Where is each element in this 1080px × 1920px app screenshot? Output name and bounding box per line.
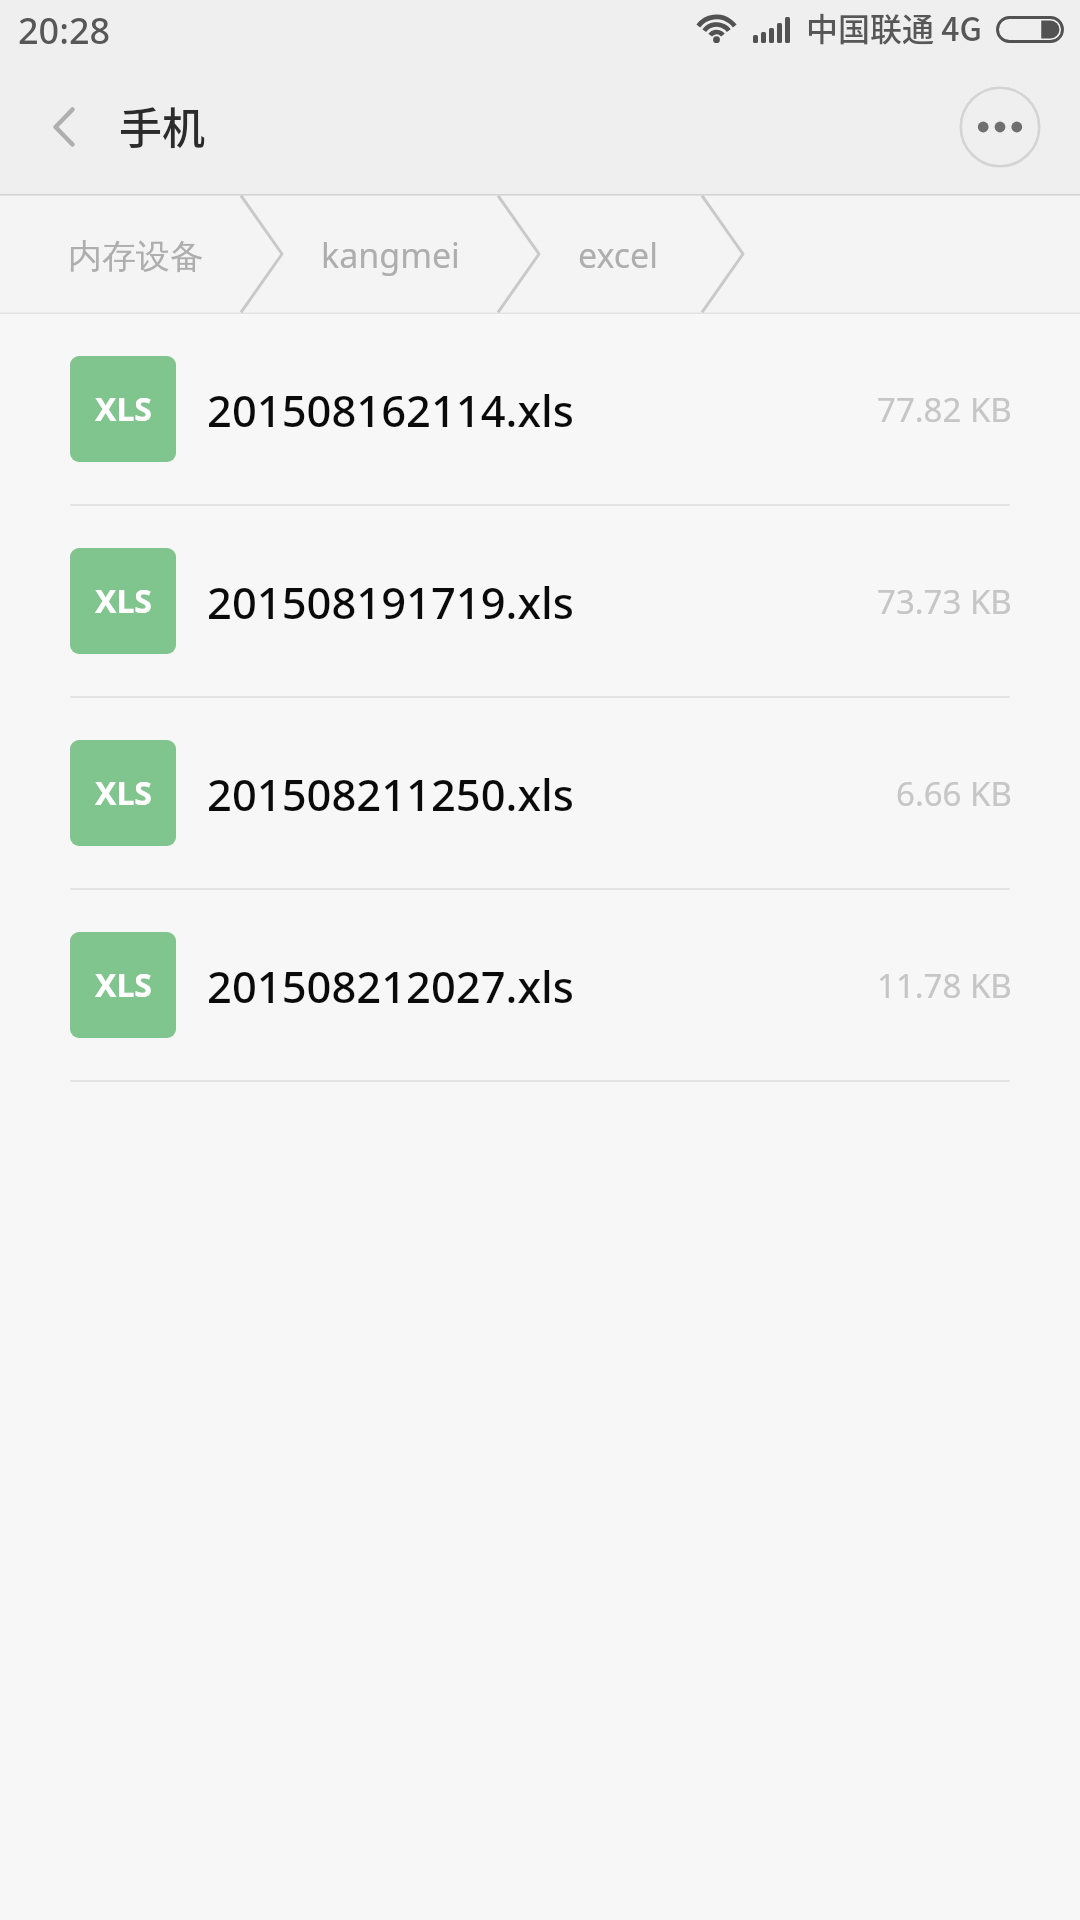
- staticText: 201508162114.xls: [207, 380, 877, 439]
- button[interactable]: 内存设备: [68, 194, 204, 314]
- staticText: 11.78 KB: [877, 963, 1012, 1008]
- staticText: 201508211250.xls: [207, 764, 896, 823]
- button[interactable]: Back: [16, 79, 112, 175]
- staticText: 20:28: [18, 6, 111, 55]
- staticText: 中国联通 4G: [806, 4, 982, 50]
- staticText: XLS: [95, 771, 152, 815]
- staticText: XLS: [95, 579, 152, 623]
- staticText: 6.66 KB: [896, 771, 1012, 816]
- staticText: excel: [578, 232, 659, 278]
- button[interactable]: kangmei: [321, 194, 460, 314]
- button[interactable]: XLS: [0, 506, 1080, 698]
- button[interactable]: XLS: [0, 314, 1080, 506]
- staticText: XLS: [95, 387, 152, 431]
- button[interactable]: More options: [955, 82, 1045, 172]
- staticText: 73.73 KB: [877, 579, 1012, 624]
- button[interactable]: XLS: [0, 698, 1080, 890]
- staticText: 201508191719.xls: [207, 572, 877, 631]
- staticText: 77.82 KB: [877, 387, 1012, 432]
- staticText: 手机: [119, 94, 205, 156]
- staticText: 201508212027.xls: [207, 956, 877, 1015]
- staticText: 内存设备: [68, 235, 204, 278]
- button[interactable]: excel: [578, 194, 659, 314]
- staticText: kangmei: [321, 232, 460, 278]
- staticText: XLS: [95, 963, 152, 1007]
- button[interactable]: XLS: [0, 890, 1080, 1082]
